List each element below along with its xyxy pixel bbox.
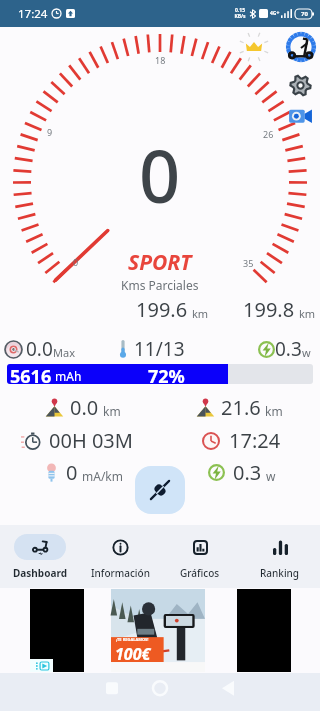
staticText: 0.3 [275,336,302,362]
staticText: 17:24 [18,6,48,22]
staticText: km [299,306,316,321]
staticText: km [103,403,121,419]
staticText: 72% [148,364,185,384]
button[interactable]: Dashboard [0,525,80,588]
staticText: 5616 [10,364,52,384]
staticText: 0.15 KB/s [234,7,246,20]
staticText: km [265,403,283,419]
staticText: Dashboard [13,566,67,580]
staticText: 0.0 [26,336,53,362]
staticText: 00H 03M [49,427,133,454]
button[interactable]: Record video [286,104,314,132]
staticText: 35 [243,257,254,269]
staticText: Gráficos [180,566,220,580]
staticText: 70 [301,10,308,18]
button[interactable]: Speedometer [284,30,318,64]
button[interactable]: Gráficos [160,525,240,588]
staticText: Max [53,345,75,360]
staticText: 17:24 [229,427,281,454]
staticText: 21.6 [221,394,261,421]
staticText: mAh [55,368,82,384]
staticText: 11/13 [134,336,185,362]
staticText: Ranking [260,566,300,580]
staticText: mA/km [82,468,123,484]
staticText: 18 [155,54,166,66]
staticText: 0 [66,459,78,486]
staticText: 100€ [115,643,151,665]
button[interactable]: Settings [286,71,314,99]
staticText: w [302,345,311,360]
staticText: km [192,306,209,321]
button[interactable]: Ranking [240,525,320,588]
button[interactable]: Connect [135,466,185,514]
staticText: 26 [263,128,274,140]
staticText: Información [91,566,150,580]
staticText: 0.0 [70,394,99,421]
staticText: 199.8 [243,296,295,323]
staticText: 0 [139,126,181,224]
staticText: ¡TE REGALAMOS! [116,637,149,642]
staticText: 0.3 [233,459,262,486]
staticText: w [266,468,276,484]
staticText: 0 [73,256,79,268]
button[interactable]: Premium [237,30,271,64]
staticText: 4G+ [270,10,280,17]
staticText: 199.6 [136,296,188,323]
staticText: Kms Parciales [121,277,199,293]
button[interactable]: Advertisement [111,589,205,672]
staticText: 9 [47,126,53,138]
staticText: SPORT [128,248,192,277]
button[interactable]: Información [80,525,160,588]
